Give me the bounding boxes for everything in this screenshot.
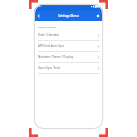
- staticText: APN Sert Auto Sync: [38, 44, 97, 48]
- button[interactable]: APN Sert Auto Sync: [34, 41, 103, 51]
- staticText: Open Sync Tools: [38, 66, 97, 70]
- staticText: General Options: [38, 25, 57, 28]
- button[interactable]: Date / Calendar: [34, 30, 103, 40]
- button[interactable]: More options: [94, 12, 102, 20]
- button[interactable]: Back: [35, 12, 43, 20]
- staticText: Settings Menu: [58, 14, 79, 18]
- button[interactable]: Numbers Theme / Display: [34, 52, 103, 62]
- staticText: Numbers Theme / Display: [38, 55, 97, 59]
- staticText: 9:41: [36, 5, 41, 8]
- button[interactable]: Open Sync Tools: [34, 63, 103, 73]
- staticText: Date / Calendar: [38, 33, 97, 37]
